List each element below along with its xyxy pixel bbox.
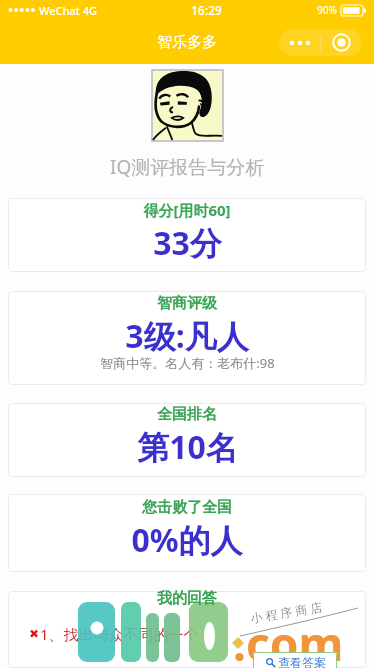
button[interactable]: 得分[用时60]: [8, 198, 366, 272]
button[interactable]: 您击败了全国: [8, 494, 366, 572]
staticText: 我的回答: [157, 589, 217, 608]
staticText: 查看答案: [278, 655, 326, 668]
staticText: 智商中等。名人有：老布什:98: [100, 354, 275, 372]
staticText: 第10名: [137, 425, 238, 469]
staticText: 小 程 序 商 店: [249, 598, 324, 626]
button[interactable]: 全国排名: [8, 403, 366, 477]
staticText: 得分[用时60]: [143, 200, 231, 220]
button[interactable]: 智商评级: [8, 291, 366, 385]
staticText: 90%: [317, 3, 337, 17]
staticText: .com: [233, 612, 344, 668]
staticText: ✖: [29, 627, 40, 641]
staticText: IQ测评报告与分析: [110, 154, 265, 180]
staticText: 全国排名: [157, 405, 217, 424]
button[interactable]: Close mini program: [321, 29, 362, 56]
staticText: 智商评级: [157, 294, 217, 313]
staticText: 您击败了全国: [142, 498, 232, 517]
staticText: 1、找出与众不同的一个：: [40, 624, 214, 644]
staticText: WeChat 4G: [39, 3, 97, 18]
staticText: 0%的人: [131, 518, 243, 562]
button[interactable]: ✖: [8, 591, 366, 668]
staticText: 智乐多多: [157, 33, 217, 52]
button[interactable]: More options: [279, 29, 320, 56]
staticText: 16:29: [191, 2, 222, 18]
staticText: 33分: [153, 221, 222, 265]
button[interactable]: 查看答案: [253, 652, 337, 668]
staticText: 3级:凡人: [125, 314, 249, 358]
